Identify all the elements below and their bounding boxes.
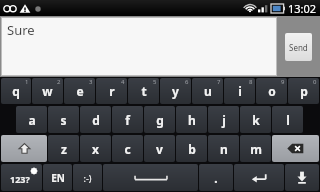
button[interactable]: Symbols xyxy=(1,164,42,191)
staticText: 6 xyxy=(185,78,189,86)
button[interactable]: :-) xyxy=(73,164,102,191)
staticText: 4 xyxy=(121,78,125,86)
staticText: c xyxy=(124,141,131,157)
button[interactable]: Enter xyxy=(234,164,284,191)
staticText: a xyxy=(28,112,36,128)
button[interactable]: e xyxy=(64,78,95,104)
staticText: o xyxy=(268,83,276,99)
staticText: 2 xyxy=(57,78,61,86)
button[interactable]: h xyxy=(176,106,207,133)
button[interactable]: Sure xyxy=(2,18,276,75)
staticText: g xyxy=(156,112,164,128)
button[interactable]: l xyxy=(272,106,303,133)
staticText: 13:02 xyxy=(288,1,317,16)
staticText: z xyxy=(61,141,67,157)
staticText: i xyxy=(238,83,242,99)
staticText: 123? xyxy=(10,173,30,185)
staticText: EN xyxy=(51,171,65,185)
staticText: j xyxy=(222,112,226,128)
button[interactable]: Backspace xyxy=(272,135,319,162)
staticText: f xyxy=(125,112,130,128)
staticText: :-) xyxy=(83,172,92,184)
staticText: 5 xyxy=(153,78,157,86)
staticText: w xyxy=(42,83,53,99)
staticText: t xyxy=(141,83,147,99)
staticText: l xyxy=(286,112,290,128)
staticText: 7 xyxy=(217,78,221,86)
button[interactable]: d xyxy=(80,106,111,133)
staticText: h xyxy=(188,112,196,128)
staticText: 9 xyxy=(281,78,285,86)
staticText: s xyxy=(60,112,67,128)
staticText: . xyxy=(214,170,218,186)
button[interactable]: i xyxy=(224,78,255,104)
staticText: v xyxy=(156,141,163,157)
staticText: Send xyxy=(289,42,308,53)
button[interactable]: x xyxy=(80,135,111,162)
button[interactable]: Space xyxy=(103,164,198,191)
button[interactable]: t xyxy=(128,78,159,104)
button[interactable]: Hide keyboard xyxy=(285,164,319,191)
button[interactable]: g xyxy=(144,106,175,133)
button[interactable]: k xyxy=(240,106,271,133)
button[interactable]: w xyxy=(32,78,63,104)
staticText: 8 xyxy=(249,78,253,86)
staticText: x xyxy=(92,141,99,157)
button[interactable]: s xyxy=(48,106,79,133)
button[interactable]: n xyxy=(208,135,239,162)
staticText: b xyxy=(188,141,196,157)
staticText: 0 xyxy=(313,78,317,86)
button[interactable]: f xyxy=(112,106,143,133)
staticText: y xyxy=(172,83,179,99)
button[interactable]: Send xyxy=(285,33,312,61)
button[interactable]: r xyxy=(96,78,127,104)
staticText: n xyxy=(220,141,228,157)
button[interactable]: c xyxy=(112,135,143,162)
staticText: q xyxy=(12,83,20,99)
staticText: e xyxy=(76,83,84,99)
staticText: u xyxy=(204,83,212,99)
button[interactable]: j xyxy=(208,106,239,133)
button[interactable]: z xyxy=(48,135,79,162)
staticText: k xyxy=(252,112,260,128)
button[interactable]: m xyxy=(240,135,271,162)
button[interactable]: b xyxy=(176,135,207,162)
button[interactable]: EN xyxy=(43,164,72,191)
button[interactable]: p xyxy=(288,78,319,104)
staticText: 3 xyxy=(89,78,93,86)
staticText: p xyxy=(300,83,308,99)
button[interactable]: Shift xyxy=(1,135,47,162)
staticText: 1 xyxy=(25,78,29,86)
button[interactable]: y xyxy=(160,78,191,104)
button[interactable]: v xyxy=(144,135,175,162)
staticText: r xyxy=(109,83,115,99)
button[interactable]: . xyxy=(199,164,233,191)
staticText: d xyxy=(92,112,100,128)
button[interactable]: a xyxy=(16,106,47,133)
staticText: Sure xyxy=(7,21,35,39)
button[interactable]: q xyxy=(1,78,31,104)
button[interactable]: o xyxy=(256,78,287,104)
button[interactable]: u xyxy=(192,78,223,104)
staticText: m xyxy=(250,141,262,157)
